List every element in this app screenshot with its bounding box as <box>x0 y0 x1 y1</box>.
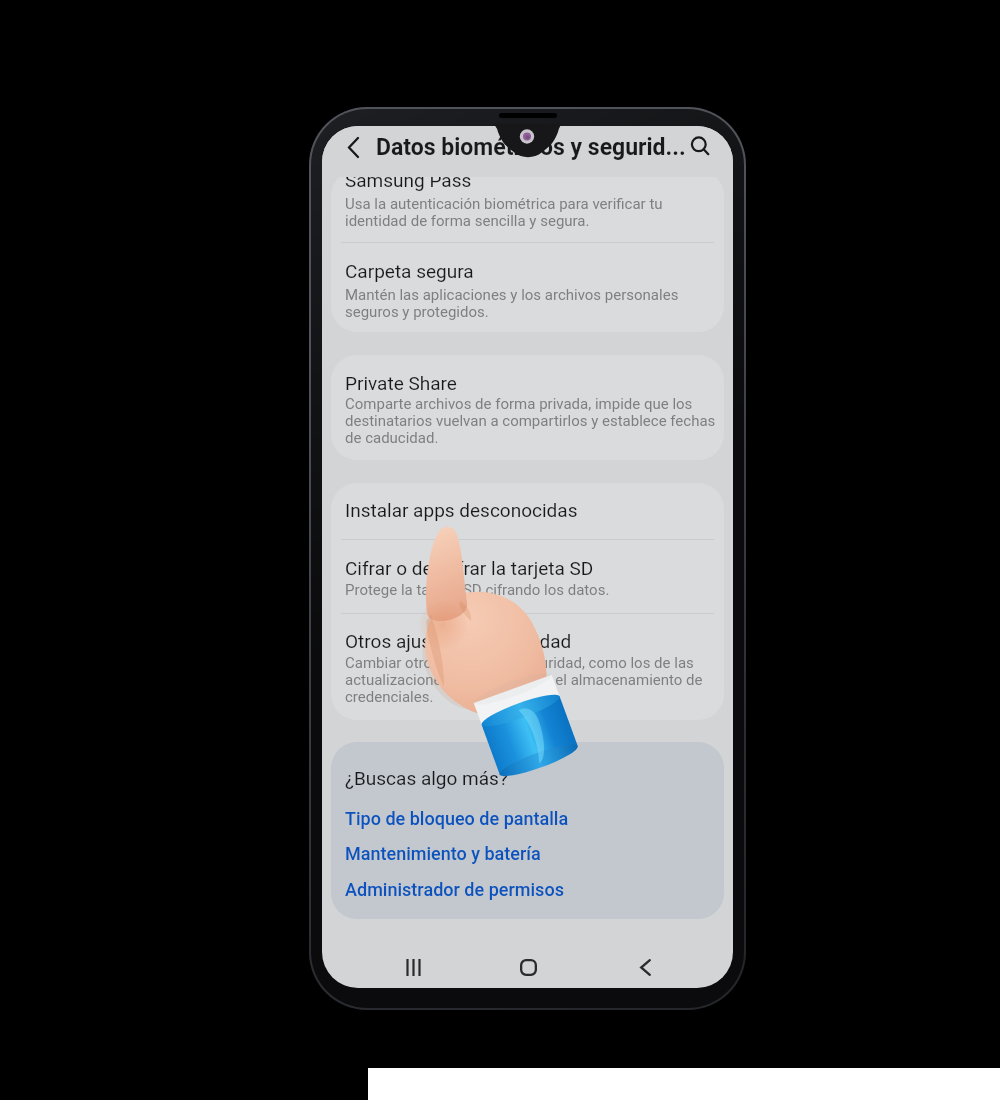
staticText: Cambiar otros ajustes de seguridad, como… <box>345 654 694 672</box>
button[interactable] <box>331 540 724 613</box>
staticText: Mantén las aplicaciones y los archivos p… <box>345 286 679 304</box>
staticText: credenciales. <box>345 688 434 706</box>
staticText: Administrador de permisos <box>345 879 564 900</box>
button[interactable]: Back <box>331 126 375 169</box>
staticText: Protege la tarjeta SD cifrando los datos… <box>345 581 610 599</box>
staticText: identidad de forma sencilla y segura. <box>345 212 590 230</box>
staticText: Datos biométricos y segurid... <box>376 134 686 161</box>
button[interactable] <box>331 243 724 332</box>
button[interactable]: Back <box>600 943 691 988</box>
staticText: ¿Buscas algo más? <box>345 767 508 789</box>
button[interactable] <box>331 483 724 539</box>
button[interactable]: Mantenimiento y batería <box>341 837 545 870</box>
button[interactable] <box>331 355 724 460</box>
button[interactable]: Home <box>483 943 574 988</box>
staticText: Instalar apps desconocidas <box>345 499 578 521</box>
button[interactable]: Tipo de bloqueo de pantalla <box>341 802 573 835</box>
staticText: Comparte archivos de forma privada, impi… <box>345 395 693 413</box>
staticText: Tipo de bloqueo de pantalla <box>345 808 569 829</box>
staticText: Samsung Pass <box>345 169 472 191</box>
staticText: Carpeta segura <box>345 260 474 282</box>
button[interactable]: Recents <box>368 943 459 988</box>
staticText: Otros ajustes de seguridad <box>345 630 572 652</box>
staticText: de caducidad. <box>345 429 439 447</box>
staticText: Usa la autenticación biométrica para ver… <box>345 195 663 213</box>
staticText: seguros y protegidos. <box>345 303 489 321</box>
staticText: actualizaciones de seguridad o el almace… <box>345 671 703 689</box>
button[interactable] <box>331 179 724 242</box>
button[interactable]: Administrador de permisos <box>341 873 568 906</box>
staticText: destinatarios vuelvan a compartirlos y e… <box>345 412 716 430</box>
button[interactable] <box>331 614 724 720</box>
staticText: Mantenimiento y batería <box>345 843 541 864</box>
button[interactable]: Search <box>679 126 723 170</box>
staticText: Cifrar o descifrar la tarjeta SD <box>345 557 594 579</box>
staticText: Private Share <box>345 372 457 394</box>
